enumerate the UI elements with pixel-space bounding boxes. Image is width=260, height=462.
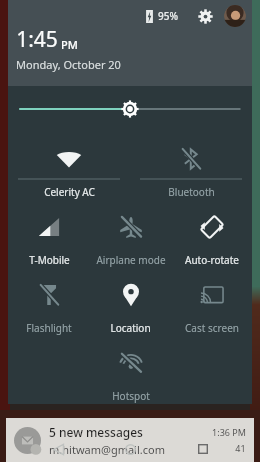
staticText: Cast screen	[185, 321, 239, 335]
button[interactable]: Location	[90, 272, 171, 340]
button[interactable]: Flashlight	[8, 272, 90, 340]
button[interactable]: Home	[115, 436, 145, 462]
button[interactable]: Hotspot	[90, 340, 171, 404]
staticText: Airplane mode	[96, 253, 166, 267]
staticText: 1:36 PM	[212, 426, 246, 438]
button[interactable]: Cast screen	[171, 272, 252, 340]
staticText: PM	[61, 37, 78, 52]
staticText: 5 new messages	[49, 424, 143, 440]
button[interactable]: 5 new messages	[6, 418, 254, 462]
staticText: Flashlight	[26, 321, 72, 335]
staticText: Bluetooth	[168, 185, 215, 199]
button[interactable]: Auto-rotate	[171, 204, 252, 272]
button[interactable]: Settings	[192, 3, 218, 29]
staticText: 95%	[158, 9, 178, 23]
button[interactable]: Recent apps	[188, 436, 218, 462]
staticText: 41	[235, 442, 246, 454]
staticText: m.hitwam@gmail.com	[49, 442, 165, 457]
staticText: Hotspot	[112, 389, 150, 403]
staticText: Auto-rotate	[185, 253, 239, 267]
staticText: Location	[110, 321, 151, 335]
staticText: T-Mobile	[29, 253, 70, 267]
button[interactable]: Celerity AC	[8, 136, 130, 204]
staticText: Monday, October 20	[16, 57, 121, 72]
staticText: Celerity AC	[44, 185, 95, 199]
button[interactable]: Airplane mode	[90, 204, 171, 272]
button[interactable]: T-Mobile	[8, 204, 90, 272]
staticText: 1:45	[16, 25, 58, 54]
button[interactable]: Bluetooth	[130, 136, 252, 204]
button[interactable]: Brightness	[8, 96, 252, 122]
button[interactable]: User profile	[224, 5, 246, 27]
button[interactable]: Back	[43, 436, 73, 462]
